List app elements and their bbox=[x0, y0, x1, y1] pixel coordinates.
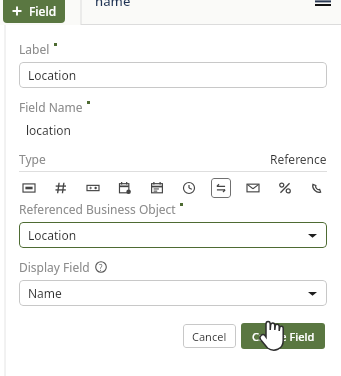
staticText: location bbox=[26, 122, 71, 138]
staticText: Location bbox=[28, 67, 77, 83]
staticText: Referenced Business Object bbox=[19, 201, 176, 217]
staticText: ? bbox=[99, 262, 103, 273]
button[interactable]: Menu bbox=[313, 0, 333, 11]
staticText: Label bbox=[19, 41, 50, 57]
staticText: Display Field bbox=[19, 259, 90, 275]
button[interactable]: Phone bbox=[307, 178, 327, 198]
staticText: Type bbox=[19, 151, 46, 167]
button[interactable]: Location bbox=[19, 222, 327, 248]
staticText: Create Field bbox=[252, 329, 315, 344]
button[interactable]: Help bbox=[95, 261, 107, 273]
button[interactable]: Date bbox=[147, 178, 167, 198]
staticText: Cancel bbox=[192, 329, 227, 344]
staticText: name bbox=[95, 0, 131, 10]
button[interactable]: Text bbox=[19, 178, 39, 198]
staticText: Field bbox=[29, 3, 57, 19]
button[interactable]: Email bbox=[243, 178, 263, 198]
button[interactable]: Location bbox=[19, 62, 327, 88]
button[interactable]: Date time bbox=[115, 178, 135, 198]
button[interactable]: Reference bbox=[211, 178, 231, 198]
staticText: Field Name bbox=[19, 99, 83, 115]
button[interactable]: Percent bbox=[275, 178, 295, 198]
staticText: Location bbox=[28, 227, 77, 243]
button[interactable]: Boolean bbox=[83, 178, 103, 198]
button[interactable]: Time bbox=[179, 178, 199, 198]
button[interactable]: Field bbox=[3, 0, 65, 23]
staticText: Reference bbox=[270, 151, 327, 167]
button[interactable]: Name bbox=[19, 280, 327, 306]
button[interactable]: Create Field bbox=[241, 323, 325, 349]
staticText: Name bbox=[28, 285, 62, 301]
button[interactable]: Number bbox=[51, 178, 71, 198]
button[interactable]: Cancel bbox=[183, 324, 236, 348]
